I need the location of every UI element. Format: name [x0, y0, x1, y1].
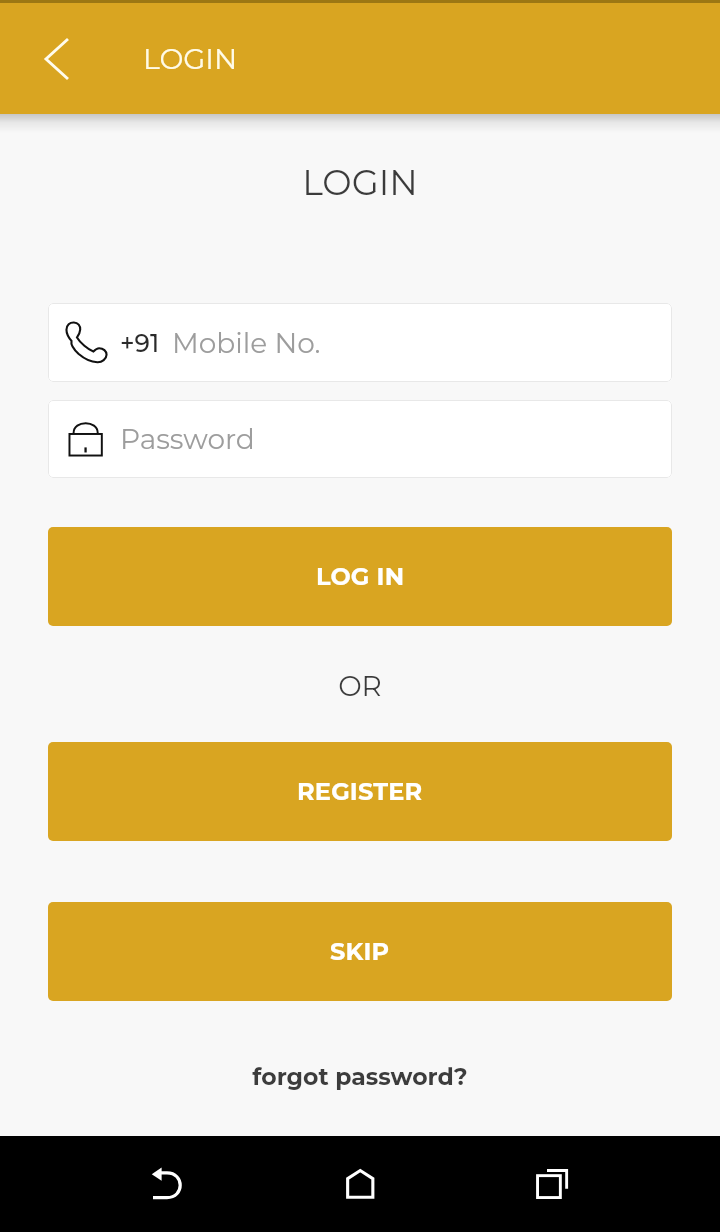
- button[interactable]: Back: [120, 1136, 216, 1232]
- staticText: SKIP: [330, 937, 390, 966]
- staticText: REGISTER: [297, 777, 423, 806]
- button[interactable]: Recent apps: [504, 1136, 600, 1232]
- button[interactable]: +91: [48, 303, 672, 382]
- button[interactable]: forgot password?: [48, 1062, 672, 1091]
- staticText: LOG IN: [316, 562, 405, 591]
- button[interactable]: LOG IN: [48, 527, 672, 626]
- staticText: Mobile No.: [172, 326, 321, 360]
- staticText: LOGIN: [48, 161, 672, 204]
- button[interactable]: REGISTER: [48, 742, 672, 841]
- button[interactable]: Back: [0, 3, 110, 114]
- staticText: LOGIN: [143, 41, 238, 76]
- button[interactable]: Home: [312, 1136, 408, 1232]
- staticText: +91: [120, 328, 160, 358]
- staticText: Password: [120, 422, 255, 456]
- staticText: forgot password?: [48, 1062, 672, 1091]
- button[interactable]: Password: [48, 400, 672, 478]
- button[interactable]: SKIP: [48, 902, 672, 1001]
- staticText: OR: [48, 669, 672, 703]
